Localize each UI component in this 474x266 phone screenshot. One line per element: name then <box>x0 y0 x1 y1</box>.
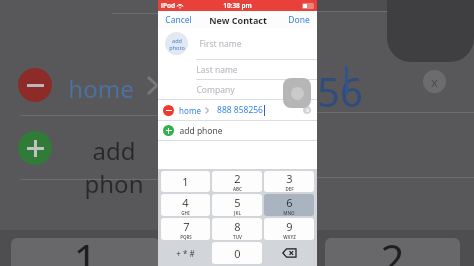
button[interactable]: Clear text <box>303 106 311 114</box>
staticText: 10:38 pm <box>223 1 252 10</box>
staticText: Done <box>288 14 310 25</box>
staticText: 8 <box>234 219 241 234</box>
staticText: add <box>172 37 182 44</box>
staticText: add phone <box>179 125 223 137</box>
button[interactable]: First name <box>188 28 317 59</box>
staticText: PQRS <box>180 234 192 240</box>
staticText: x <box>306 107 309 114</box>
button[interactable]: Delete <box>263 242 315 264</box>
staticText: JKL <box>234 210 241 216</box>
staticText: Last name <box>196 64 238 76</box>
button[interactable]: 2 <box>212 171 262 192</box>
staticText: add phon <box>68 134 160 200</box>
staticText: 4 <box>182 195 189 210</box>
staticText: home <box>179 105 201 116</box>
button[interactable]: add phone <box>158 121 317 140</box>
staticText: ABC <box>233 186 242 192</box>
staticText: home <box>68 72 134 105</box>
staticText: First name <box>199 38 242 50</box>
staticText: TUV <box>233 234 242 240</box>
button[interactable]: 6 <box>264 194 314 216</box>
button[interactable]: Add photo <box>165 32 188 55</box>
button[interactable]: Cancel <box>158 11 199 28</box>
staticText: photo <box>169 44 185 51</box>
staticText: MNO <box>283 210 295 216</box>
staticText: 3 <box>286 171 293 186</box>
staticText: 1 <box>182 174 189 189</box>
staticText: DEF <box>285 186 294 192</box>
staticText: 7 <box>183 219 190 234</box>
staticText: WXYZ <box>283 234 296 240</box>
staticText: 0 <box>234 246 241 261</box>
staticText: 888 858256 <box>217 104 263 116</box>
button[interactable]: 8 <box>212 218 262 240</box>
button[interactable]: home <box>158 100 317 120</box>
staticText: GHI <box>181 210 190 216</box>
staticText: 1 <box>73 230 98 266</box>
staticText: Cancel <box>165 14 192 25</box>
button[interactable]: Company <box>158 80 317 99</box>
staticText: 2 <box>234 171 241 186</box>
staticText: 2 <box>380 230 405 266</box>
staticText: New Contact <box>209 14 267 26</box>
staticText: iPod <box>161 1 175 10</box>
button[interactable]: 9 <box>264 218 314 240</box>
staticText: Company <box>196 84 235 96</box>
staticText: 5 <box>234 195 241 210</box>
button[interactable]: 7 <box>161 218 210 240</box>
staticText: 9 <box>286 219 293 234</box>
staticText: 6 <box>286 195 293 210</box>
staticText: x <box>431 73 438 91</box>
button[interactable]: Last name <box>158 60 317 79</box>
staticText: + * # <box>176 248 195 259</box>
button[interactable]: Done <box>281 11 317 28</box>
staticText: 56 <box>317 64 363 118</box>
button[interactable]: 5 <box>212 194 262 216</box>
button[interactable]: 4 <box>161 194 210 216</box>
button[interactable]: 3 <box>264 171 314 192</box>
button[interactable]: Symbols plus star hash <box>160 242 211 264</box>
button[interactable]: 0 <box>212 242 262 264</box>
button[interactable]: 1 <box>161 171 210 192</box>
